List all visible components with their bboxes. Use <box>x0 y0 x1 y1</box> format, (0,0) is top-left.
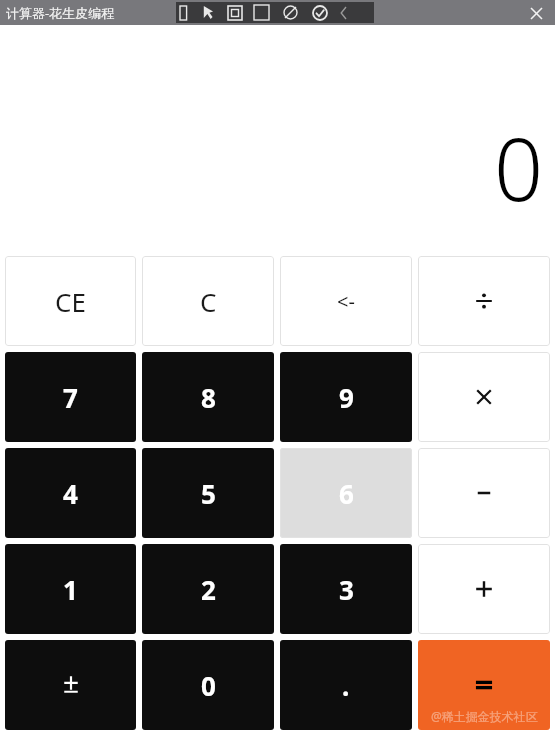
staticText: 6 <box>339 476 354 511</box>
button[interactable]: 9 <box>280 352 412 442</box>
staticText: <- <box>337 288 355 315</box>
button[interactable]: Divide <box>418 256 550 346</box>
button[interactable]: 8 <box>142 352 274 442</box>
button[interactable]: C <box>142 256 274 346</box>
staticText: 0 <box>201 668 216 703</box>
button[interactable]: . <box>280 640 412 730</box>
button[interactable]: 3 <box>280 544 412 634</box>
staticText: 9 <box>339 380 354 415</box>
staticText: 3 <box>339 572 354 607</box>
button[interactable]: Plus minus <box>5 640 136 730</box>
staticText: 4 <box>63 476 78 511</box>
staticText: 1 <box>63 572 78 607</box>
button[interactable]: Close <box>527 4 545 22</box>
staticText: 0 <box>493 109 543 226</box>
staticText: 5 <box>201 476 216 511</box>
button[interactable]: Add <box>418 544 550 634</box>
button[interactable]: 1 <box>5 544 136 634</box>
button[interactable]: Multiply <box>418 352 550 442</box>
button[interactable]: 2 <box>142 544 274 634</box>
staticText: C <box>200 284 217 319</box>
button[interactable]: CE <box>5 256 136 346</box>
staticText: 8 <box>201 380 216 415</box>
button[interactable]: 7 <box>5 352 136 442</box>
button[interactable]: Equals <box>418 640 550 730</box>
staticText: . <box>342 668 350 703</box>
staticText: 2 <box>201 572 216 607</box>
button[interactable]: Subtract <box>418 448 550 538</box>
button[interactable]: <- <box>280 256 412 346</box>
staticText: @稀土掘金技术社区 <box>431 708 538 724</box>
button[interactable]: 0 <box>142 640 274 730</box>
staticText: CE <box>55 284 86 319</box>
button[interactable]: 4 <box>5 448 136 538</box>
button[interactable]: 5 <box>142 448 274 538</box>
staticText: 计算器-花生皮编程 <box>6 4 115 22</box>
staticText: 7 <box>63 380 78 415</box>
button[interactable]: 6 <box>280 448 412 538</box>
